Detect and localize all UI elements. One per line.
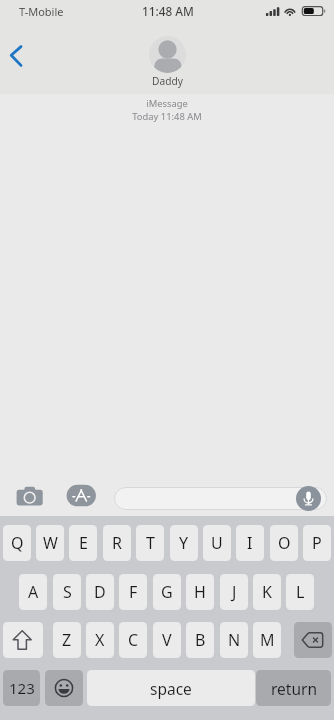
staticText: W (43, 532, 58, 554)
staticText: P (312, 532, 322, 554)
staticText: G (161, 581, 173, 603)
staticText: M (260, 629, 275, 651)
staticText: L (296, 581, 305, 603)
staticText: A (28, 581, 39, 603)
button[interactable]: V (153, 622, 181, 658)
button[interactable] (114, 487, 327, 510)
button[interactable]: J (220, 574, 248, 610)
button[interactable]: S (53, 574, 81, 610)
button[interactable]: A (19, 574, 47, 610)
button[interactable]: C (119, 622, 147, 658)
staticText: U (211, 532, 223, 554)
button[interactable]: P (303, 525, 331, 561)
button[interactable]: G (153, 574, 181, 610)
button[interactable]: K (253, 574, 281, 610)
button[interactable]: Record audio (296, 486, 321, 511)
staticText: X (95, 629, 105, 651)
staticText: iMessage (0, 97, 334, 110)
staticText: 11:48 AM (142, 3, 194, 19)
button[interactable]: 123 (3, 670, 40, 706)
button[interactable]: Camera (12, 480, 48, 516)
staticText: Daddy (152, 74, 183, 88)
staticText: space (150, 678, 192, 699)
button[interactable]: Y (170, 525, 198, 561)
staticText: T (146, 532, 155, 554)
button[interactable]: H (186, 574, 214, 610)
staticText: V (162, 629, 172, 651)
button[interactable]: N (220, 622, 248, 658)
button[interactable]: space (87, 670, 255, 706)
button[interactable]: W (36, 525, 64, 561)
button[interactable]: Z (53, 622, 81, 658)
staticText: D (94, 581, 106, 603)
button[interactable]: B (186, 622, 214, 658)
button[interactable]: return (256, 670, 331, 706)
staticText: R (112, 532, 122, 554)
staticText: 123 (9, 678, 35, 698)
button[interactable]: Back (0, 38, 34, 72)
button[interactable]: R (103, 525, 131, 561)
button[interactable]: Daddy (149, 36, 186, 88)
button[interactable]: D (86, 574, 114, 610)
button[interactable]: M (253, 622, 281, 658)
staticText: N (228, 629, 241, 651)
staticText: H (194, 581, 206, 603)
staticText: T-Mobile (19, 4, 64, 19)
button[interactable]: T (136, 525, 164, 561)
button[interactable]: F (119, 574, 147, 610)
staticText: J (232, 581, 237, 603)
button[interactable]: Emoji (45, 670, 83, 706)
staticText: E (79, 532, 88, 554)
staticText: Y (179, 532, 189, 554)
staticText: B (195, 629, 206, 651)
staticText: O (278, 532, 291, 554)
staticText: K (262, 581, 272, 603)
button[interactable]: Q (3, 525, 31, 561)
staticText: Q (11, 532, 24, 554)
staticText: C (128, 629, 139, 651)
staticText: Z (62, 629, 72, 651)
button[interactable]: I (236, 525, 264, 561)
button[interactable]: X (86, 622, 114, 658)
button[interactable]: L (286, 574, 314, 610)
staticText: F (129, 581, 138, 603)
staticText: Today 11:48 AM (0, 110, 334, 123)
staticText: S (63, 581, 72, 603)
staticText: I (247, 532, 253, 554)
button[interactable]: Backspace (294, 622, 332, 658)
button[interactable]: Apps (64, 480, 100, 516)
button[interactable]: E (69, 525, 97, 561)
staticText: return (271, 678, 317, 699)
button[interactable]: U (203, 525, 231, 561)
button[interactable]: Shift (3, 622, 43, 658)
button[interactable]: O (270, 525, 298, 561)
